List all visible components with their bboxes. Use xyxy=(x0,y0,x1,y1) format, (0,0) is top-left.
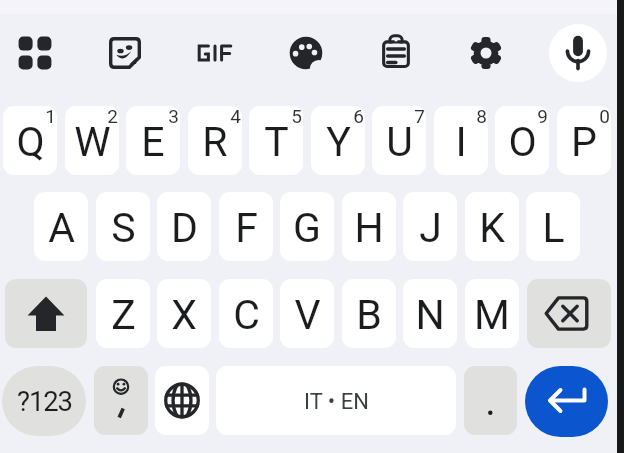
staticText: Y xyxy=(326,118,351,166)
button[interactable]: Q xyxy=(3,106,57,175)
staticText: A xyxy=(48,204,75,252)
staticText: 7 xyxy=(414,106,425,127)
staticText: E xyxy=(141,118,165,166)
button[interactable]: T xyxy=(249,106,303,175)
button[interactable]: Clipboard xyxy=(373,30,419,76)
staticText: T xyxy=(264,118,289,166)
button[interactable]: A xyxy=(34,192,88,261)
staticText: 1 xyxy=(45,106,56,127)
staticText: Z xyxy=(111,291,136,339)
staticText: N xyxy=(415,291,445,339)
button[interactable] xyxy=(192,30,238,76)
staticText: U xyxy=(386,118,413,166)
button[interactable]: Stickers xyxy=(102,30,148,76)
button[interactable]: Enter xyxy=(525,366,608,437)
staticText: L xyxy=(542,204,565,252)
staticText: D xyxy=(171,204,198,252)
staticText: O xyxy=(508,118,537,166)
button[interactable]: O xyxy=(495,106,549,175)
staticText: 5 xyxy=(291,106,302,127)
staticText: 2 xyxy=(107,106,118,127)
staticText: G xyxy=(293,204,321,252)
button[interactable]: L xyxy=(526,192,580,261)
button[interactable] xyxy=(464,366,517,435)
staticText: X xyxy=(171,291,197,339)
staticText: R xyxy=(202,118,228,166)
button[interactable]: Settings xyxy=(463,30,509,76)
button[interactable]: M xyxy=(465,279,519,348)
staticText: ?123 xyxy=(17,385,72,417)
button[interactable]: D xyxy=(157,192,211,261)
staticText: 9 xyxy=(537,106,548,127)
staticText: H xyxy=(354,204,384,252)
button[interactable]: S xyxy=(96,192,150,261)
button[interactable]: R xyxy=(188,106,242,175)
button[interactable]: K xyxy=(465,192,519,261)
button[interactable]: F xyxy=(219,192,273,261)
staticText: K xyxy=(479,204,505,252)
button[interactable]: U xyxy=(372,106,426,175)
button[interactable]: Apps xyxy=(12,30,58,76)
button[interactable]: Y xyxy=(311,106,365,175)
staticText: S xyxy=(111,204,136,252)
button[interactable]: Change language xyxy=(155,366,209,435)
staticText: J xyxy=(419,204,442,252)
staticText: W xyxy=(74,118,111,166)
button[interactable]: X xyxy=(157,279,211,348)
button[interactable]: H xyxy=(342,192,396,261)
button[interactable]: Shift xyxy=(5,279,87,348)
button[interactable]: ?123 xyxy=(2,366,86,436)
staticText: Q xyxy=(16,118,45,166)
button[interactable]: W xyxy=(65,106,119,175)
button[interactable]: B xyxy=(342,279,396,348)
button[interactable]: J xyxy=(403,192,457,261)
staticText: F xyxy=(235,204,258,252)
button[interactable]: C xyxy=(219,279,273,348)
staticText: 8 xyxy=(476,106,487,127)
button[interactable]: Backspace xyxy=(527,279,611,348)
button[interactable]: V xyxy=(280,279,334,348)
button[interactable]: Voice input xyxy=(549,24,607,82)
staticText: B xyxy=(356,291,382,339)
staticText: M xyxy=(474,291,510,339)
button[interactable]: IT • EN xyxy=(216,366,456,435)
staticText: P xyxy=(571,118,597,166)
button[interactable]: P xyxy=(557,106,611,175)
staticText: C xyxy=(233,291,260,339)
staticText: 0 xyxy=(599,106,610,127)
staticText: I xyxy=(455,118,467,166)
button[interactable]: N xyxy=(403,279,457,348)
button[interactable]: G xyxy=(280,192,334,261)
button[interactable]: Themes xyxy=(283,30,329,76)
button[interactable]: E xyxy=(126,106,180,175)
staticText: 4 xyxy=(230,106,241,127)
staticText: 3 xyxy=(168,106,179,127)
button[interactable]: Emoji xyxy=(94,366,148,435)
staticText: IT • EN xyxy=(304,389,369,415)
staticText: 6 xyxy=(353,106,364,127)
button[interactable]: Z xyxy=(96,279,150,348)
button[interactable]: I xyxy=(434,106,488,175)
staticText: V xyxy=(294,291,321,339)
